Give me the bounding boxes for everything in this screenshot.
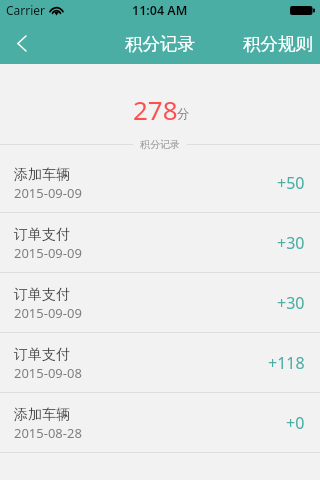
staticText: 分: [177, 106, 190, 122]
button[interactable]: Back: [0, 20, 44, 64]
staticText: 2015-09-09: [14, 244, 82, 262]
button[interactable]: 添加车辆: [0, 153, 320, 213]
staticText: +50: [277, 172, 305, 194]
button[interactable]: 订单支付: [0, 213, 320, 273]
button[interactable]: 添加车辆: [0, 393, 320, 453]
staticText: 订单支付: [14, 286, 70, 304]
staticText: 2015-09-09: [14, 184, 82, 202]
staticText: 11:04 AM: [132, 2, 188, 19]
staticText: 积分记录: [125, 33, 195, 55]
staticText: Carrier: [6, 2, 46, 18]
staticText: 2015-09-08: [14, 364, 82, 382]
staticText: 278: [133, 92, 178, 127]
staticText: +30: [277, 292, 305, 314]
staticText: +30: [277, 232, 305, 254]
staticText: 添加车辆: [14, 406, 70, 424]
staticText: 2015-09-09: [14, 304, 82, 322]
staticText: 积分规则: [243, 33, 313, 55]
staticText: 积分记录: [140, 138, 180, 151]
staticText: 添加车辆: [14, 166, 70, 184]
staticText: +0: [286, 412, 305, 434]
staticText: 订单支付: [14, 346, 70, 364]
button[interactable]: 订单支付: [0, 273, 320, 333]
button[interactable]: 订单支付: [0, 333, 320, 393]
button[interactable]: 积分规则: [233, 22, 320, 66]
staticText: +118: [268, 352, 305, 374]
staticText: 订单支付: [14, 226, 70, 244]
staticText: 2015-08-28: [14, 424, 82, 442]
